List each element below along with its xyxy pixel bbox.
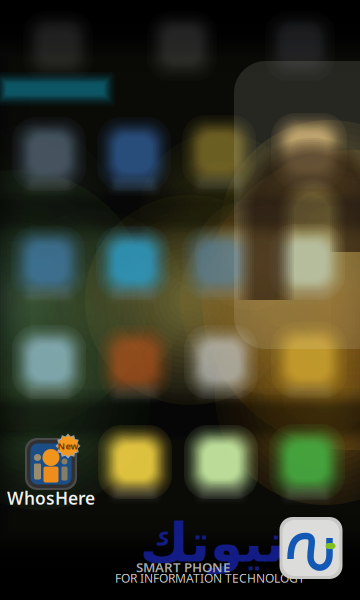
staticText: SMART PHONE (136, 558, 230, 576)
staticText: New (57, 440, 78, 452)
staticText: FOR INFORMATION TECHNOLOGY (115, 570, 305, 586)
staticText: نيوتك (139, 513, 284, 573)
staticText: WhosHere (7, 486, 95, 509)
